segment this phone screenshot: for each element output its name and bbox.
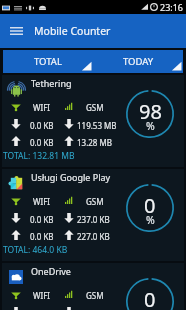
staticText: Mobile Counter <box>34 24 111 38</box>
button[interactable]: TOTAL <box>3 50 93 73</box>
staticText: TOTAL: 464.0 KB <box>3 244 68 256</box>
button[interactable]: OneDrive <box>2 263 184 310</box>
button[interactable]: Tethering <box>2 75 184 167</box>
staticText: Tethering <box>31 77 72 89</box>
staticText: % <box>146 213 155 227</box>
button[interactable]: TODAY <box>93 50 183 73</box>
staticText: 119.53 MB <box>77 120 117 131</box>
staticText: 0 <box>144 286 156 310</box>
staticText: TOTAL <box>34 55 62 68</box>
staticText: GSM <box>86 196 104 207</box>
staticText: GSM <box>86 290 104 301</box>
staticText: 13.28 MB <box>77 137 112 148</box>
staticText: 0.0 KB <box>30 231 54 242</box>
staticText: OneDrive <box>31 265 71 277</box>
staticText: 237.0 KB <box>77 214 110 225</box>
staticText: GSM <box>86 102 104 113</box>
staticText: Usługi Google Play <box>31 171 111 183</box>
staticText: WIFI <box>33 196 51 207</box>
staticText: 98 <box>139 98 162 125</box>
staticText: 0.0 KB <box>30 214 54 225</box>
button[interactable]: Usługi Google Play <box>2 169 184 261</box>
staticText: 227.0 KB <box>77 231 110 242</box>
staticText: TODAY <box>123 55 154 68</box>
staticText: 0 <box>144 192 156 219</box>
button[interactable]: Open navigation drawer <box>0 14 33 48</box>
staticText: 0.0 KB <box>30 137 54 148</box>
staticText: WIFI <box>33 102 51 113</box>
staticText: TOTAL: 132.81 MB <box>3 150 75 162</box>
staticText: WIFI <box>33 290 51 301</box>
staticText: 0.0 KB <box>30 120 54 131</box>
staticText: 23:16 <box>160 1 184 13</box>
staticText: % <box>146 119 155 133</box>
